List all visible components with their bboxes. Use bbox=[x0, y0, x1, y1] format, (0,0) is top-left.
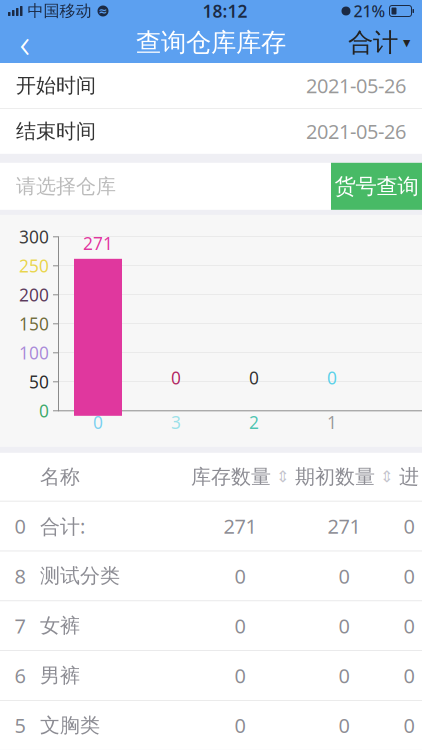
button[interactable]: 开始时间 bbox=[0, 63, 422, 108]
staticText: 250 bbox=[19, 254, 49, 277]
staticText: ▾ bbox=[403, 34, 410, 51]
staticText: 0 bbox=[403, 563, 414, 589]
staticText: 货号查询 bbox=[334, 173, 418, 199]
staticText: 50 bbox=[29, 370, 49, 393]
staticText: 2021-05-26 bbox=[306, 72, 406, 99]
staticText: 1 bbox=[327, 411, 337, 434]
staticText: 8 bbox=[14, 563, 25, 589]
staticText: 测试分类 bbox=[40, 564, 120, 588]
staticText: 0 bbox=[403, 513, 414, 539]
staticText: 271 bbox=[83, 232, 113, 255]
staticText: 200 bbox=[19, 283, 49, 306]
staticText: 7 bbox=[14, 612, 25, 639]
staticText: 0 bbox=[39, 399, 49, 422]
staticText: 查询仓库库存 bbox=[136, 27, 286, 58]
staticText: ‹ bbox=[19, 16, 30, 69]
staticText: 2021-05-26 bbox=[306, 118, 406, 145]
staticText: 0 bbox=[93, 411, 103, 434]
button[interactable]: 0 bbox=[0, 501, 422, 551]
staticText: 300 bbox=[19, 225, 49, 248]
staticText: ⇕ bbox=[276, 468, 289, 486]
staticText: 271 bbox=[327, 513, 360, 539]
staticText: ≈ bbox=[98, 5, 107, 17]
button[interactable]: 8 bbox=[0, 551, 422, 600]
button[interactable]: 7 bbox=[0, 600, 422, 650]
button[interactable]: 请选择仓库 bbox=[0, 163, 331, 210]
button[interactable]: 结束时间 bbox=[0, 109, 422, 154]
staticText: 2 bbox=[249, 411, 259, 434]
staticText: 0 bbox=[403, 612, 414, 639]
staticText: 名称 bbox=[40, 464, 80, 489]
staticText: 合计: bbox=[40, 513, 85, 539]
staticText: 男裤 bbox=[40, 663, 80, 688]
button[interactable]: Back bbox=[0, 22, 50, 63]
staticText: 271 bbox=[223, 513, 256, 539]
staticText: 0 bbox=[234, 612, 245, 639]
staticText: 0 bbox=[14, 513, 25, 539]
staticText: ⇕ bbox=[380, 468, 393, 486]
button[interactable]: 5 bbox=[0, 700, 422, 750]
staticText: 0 bbox=[338, 712, 349, 739]
staticText: 0 bbox=[249, 366, 259, 389]
staticText: 请选择仓库 bbox=[16, 174, 116, 199]
staticText: 6 bbox=[14, 662, 25, 689]
staticText: 0 bbox=[403, 662, 414, 689]
staticText: 150 bbox=[19, 312, 49, 335]
button[interactable]: 合计 bbox=[348, 22, 422, 63]
staticText: 21% bbox=[353, 0, 385, 22]
staticText: 合计 bbox=[348, 27, 398, 58]
staticText: 0 bbox=[171, 366, 181, 389]
staticText: 库存数量 bbox=[191, 464, 271, 489]
staticText: 进 bbox=[399, 464, 419, 489]
staticText: 0 bbox=[403, 712, 414, 739]
staticText: 0 bbox=[338, 612, 349, 639]
button[interactable]: 6 bbox=[0, 650, 422, 700]
staticText: 100 bbox=[19, 341, 49, 364]
staticText: 18:12 bbox=[202, 0, 247, 22]
staticText: 结束时间 bbox=[16, 119, 96, 144]
staticText: 中国移动 bbox=[27, 1, 91, 21]
staticText: 5 bbox=[14, 712, 25, 739]
staticText: 0 bbox=[327, 366, 337, 389]
staticText: 0 bbox=[234, 563, 245, 589]
staticText: 文胸类 bbox=[40, 713, 100, 738]
staticText: 0 bbox=[234, 712, 245, 739]
staticText: 0 bbox=[338, 662, 349, 689]
staticText: 0 bbox=[234, 662, 245, 689]
staticText: 女裤 bbox=[40, 613, 80, 638]
button[interactable]: 货号查询 bbox=[331, 163, 422, 210]
staticText: 3 bbox=[171, 411, 181, 434]
staticText: 0 bbox=[338, 563, 349, 589]
staticText: 期初数量 bbox=[295, 464, 375, 489]
staticText: 开始时间 bbox=[16, 73, 96, 98]
